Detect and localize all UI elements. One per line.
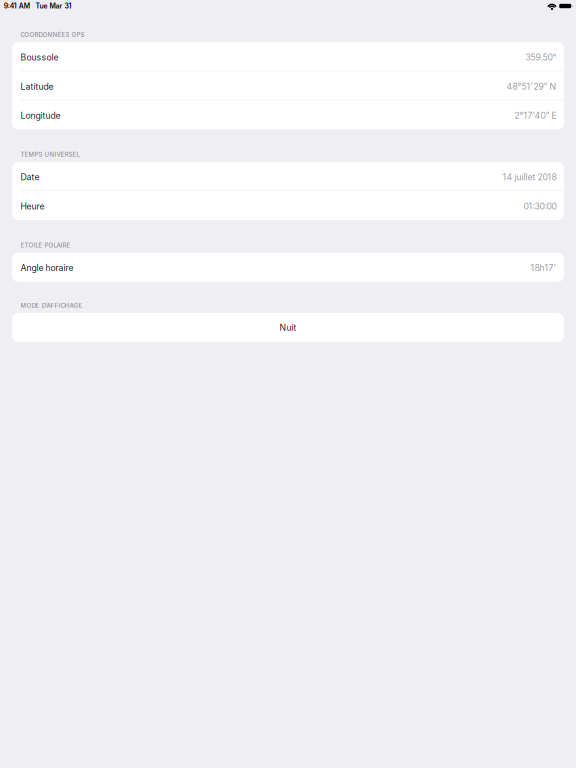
staticText: Date [21, 172, 40, 182]
button[interactable]: Latitude [12, 71, 564, 100]
staticText: 01:30:00 [523, 201, 556, 211]
staticText: 2°17'40" E [514, 110, 556, 121]
staticText: TEMPS UNIVERSEL [21, 151, 80, 158]
staticText: Nuit [279, 322, 296, 333]
staticText: Angle horaire [21, 263, 74, 273]
button[interactable]: Date [12, 162, 564, 191]
staticText: COORDONNÉES GPS [21, 31, 85, 39]
staticText: 9:41 AM [4, 2, 30, 10]
button[interactable]: Heure [12, 191, 564, 220]
button[interactable]: Longitude [12, 100, 564, 129]
staticText: Tue Mar 31 [35, 2, 71, 10]
staticText: 14 juillet 2018 [502, 172, 556, 182]
staticText: Heure [21, 201, 45, 211]
button[interactable]: Angle horaire [12, 253, 564, 282]
staticText: 359.50° [525, 52, 556, 63]
staticText: MODE D'AFFICHAGE [21, 302, 83, 309]
staticText: 48°51'29" N [506, 81, 556, 92]
staticText: Longitude [21, 110, 61, 121]
staticText: Latitude [21, 81, 54, 92]
button[interactable]: Nuit [12, 313, 564, 342]
button[interactable]: Boussole [12, 42, 564, 71]
staticText: 18h17' [530, 263, 556, 273]
staticText: Boussole [21, 52, 59, 63]
staticText: ÉTOILE POLAIRE [21, 242, 71, 249]
